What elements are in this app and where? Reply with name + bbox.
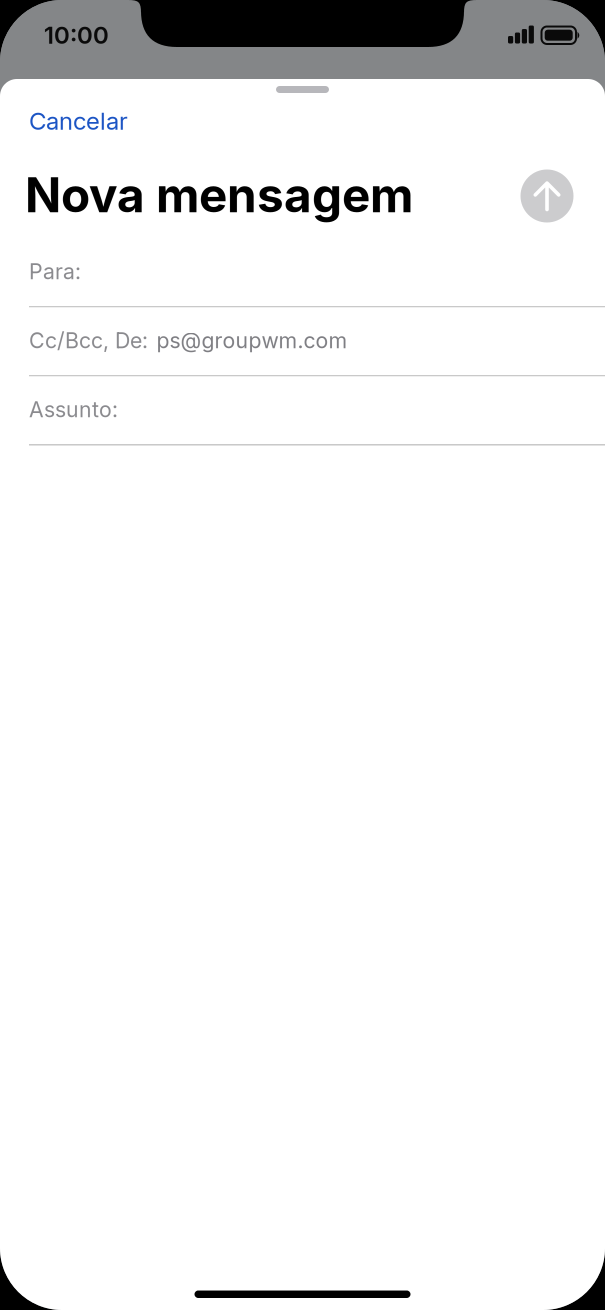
staticText: Nova mensagem [25, 166, 413, 224]
staticText: ps@groupwm.com [156, 328, 347, 353]
staticText: Assunto: [29, 397, 118, 422]
button[interactable]: Assunto: [0, 376, 605, 445]
button[interactable]: Cancelar [0, 101, 171, 141]
button[interactable]: Para: [0, 238, 605, 307]
button[interactable]: Enviar [520, 169, 573, 222]
staticText: Cancelar [29, 106, 128, 135]
button[interactable]: Cc/Bcc, De: [0, 307, 605, 376]
staticText: Para: [29, 259, 81, 284]
staticText: Cc/Bcc, De: [29, 328, 148, 353]
staticText: 10:00 [44, 20, 109, 49]
